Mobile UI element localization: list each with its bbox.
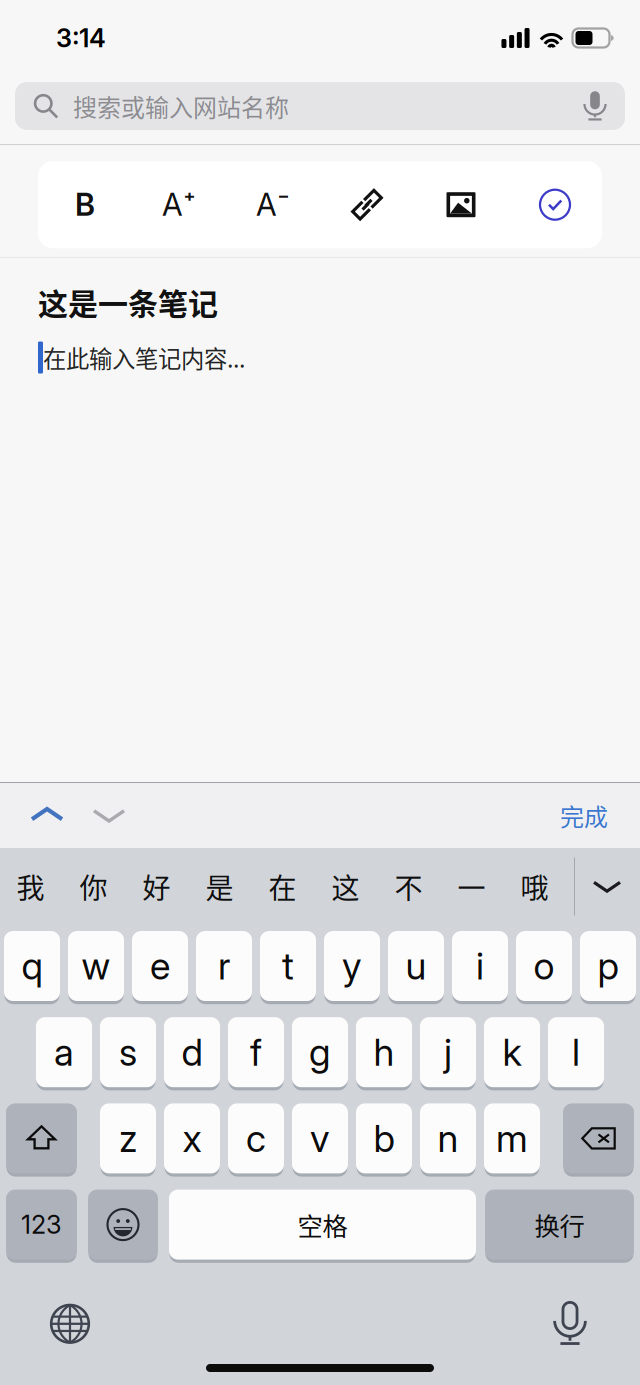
- staticText: f: [250, 1030, 262, 1075]
- button[interactable]: f: [228, 1017, 284, 1090]
- staticText: d: [181, 1030, 202, 1075]
- staticText: 搜索或输入网站名称: [73, 89, 289, 123]
- staticText: z: [119, 1116, 137, 1161]
- staticText: b: [373, 1116, 394, 1161]
- button[interactable]: v: [292, 1103, 348, 1177]
- button[interactable]: w: [68, 931, 124, 1004]
- button[interactable]: t: [260, 931, 316, 1004]
- button[interactable]: p: [580, 931, 636, 1004]
- staticText: 你: [79, 866, 107, 907]
- staticText: 这: [331, 866, 359, 907]
- staticText: 是: [205, 866, 233, 907]
- button[interactable]: 空格: [169, 1190, 476, 1263]
- staticText: 一: [457, 866, 485, 907]
- button[interactable]: A⁻: [226, 161, 320, 248]
- staticText: 在此输入笔记内容...: [43, 341, 245, 374]
- staticText: o: [533, 943, 554, 989]
- staticText: 好: [142, 866, 170, 907]
- button[interactable]: a: [36, 1017, 92, 1090]
- button[interactable]: c: [228, 1103, 284, 1177]
- button[interactable]: Next keyboard: [25, 1293, 115, 1355]
- staticText: 哦: [520, 866, 548, 907]
- button[interactable]: 哦: [503, 848, 566, 925]
- button[interactable]: B: [38, 161, 132, 248]
- button[interactable]: k: [484, 1017, 540, 1090]
- staticText: u: [405, 943, 426, 989]
- button[interactable]: h: [356, 1017, 412, 1090]
- button[interactable]: Dictation: [525, 1293, 615, 1355]
- button[interactable]: 在: [251, 848, 314, 925]
- button[interactable]: r: [196, 931, 252, 1004]
- button[interactable]: n: [420, 1103, 476, 1177]
- button[interactable]: m: [484, 1103, 540, 1177]
- staticText: r: [218, 943, 230, 989]
- staticText: e: [150, 943, 170, 989]
- staticText: 不: [394, 866, 422, 907]
- staticText: s: [119, 1030, 137, 1075]
- button[interactable]: b: [356, 1103, 412, 1177]
- button[interactable]: 是: [188, 848, 251, 925]
- staticText: 3:14: [56, 23, 106, 53]
- button[interactable]: Previous: [16, 784, 78, 848]
- button[interactable]: Next: [78, 784, 140, 848]
- staticText: k: [502, 1030, 521, 1075]
- button[interactable]: 不: [377, 848, 440, 925]
- staticText: w: [81, 943, 110, 989]
- button[interactable]: A⁺: [132, 161, 226, 248]
- staticText: 在: [268, 866, 296, 907]
- staticText: n: [437, 1116, 458, 1161]
- button[interactable]: g: [292, 1017, 348, 1090]
- button[interactable]: 完成: [554, 784, 614, 848]
- staticText: g: [309, 1030, 331, 1075]
- button[interactable]: 搜索或输入网站名称: [0, 76, 640, 144]
- staticText: 空格: [297, 1206, 347, 1243]
- button[interactable]: z: [100, 1103, 156, 1177]
- button[interactable]: 你: [62, 848, 125, 925]
- button[interactable]: Delete: [563, 1103, 634, 1177]
- staticText: c: [246, 1116, 266, 1161]
- button[interactable]: More candidates: [575, 848, 639, 925]
- staticText: h: [373, 1030, 394, 1075]
- button[interactable]: Insert image: [414, 161, 508, 248]
- button[interactable]: s: [100, 1017, 156, 1090]
- button[interactable]: Insert link: [320, 161, 414, 248]
- staticText: 完成: [560, 798, 608, 833]
- staticText: 123: [21, 1209, 62, 1240]
- staticText: 换行: [534, 1206, 584, 1243]
- button[interactable]: u: [388, 931, 444, 1004]
- staticText: A⁻: [256, 186, 290, 223]
- button[interactable]: 换行: [485, 1190, 634, 1263]
- staticText: 这是一条笔记: [38, 280, 218, 324]
- button[interactable]: j: [420, 1017, 476, 1090]
- staticText: v: [310, 1116, 330, 1161]
- staticText: i: [476, 943, 484, 989]
- staticText: B: [75, 186, 95, 223]
- button[interactable]: y: [324, 931, 380, 1004]
- staticText: q: [21, 943, 42, 989]
- button[interactable]: Emoji: [88, 1190, 158, 1263]
- button[interactable]: q: [4, 931, 60, 1004]
- staticText: A⁺: [162, 186, 196, 223]
- button[interactable]: l: [548, 1017, 604, 1090]
- button[interactable]: x: [164, 1103, 220, 1177]
- button[interactable]: 我: [0, 848, 62, 925]
- button[interactable]: i: [452, 931, 508, 1004]
- button[interactable]: d: [164, 1017, 220, 1090]
- button[interactable]: 123: [6, 1190, 77, 1263]
- staticText: l: [572, 1030, 580, 1075]
- staticText: a: [54, 1030, 74, 1075]
- button[interactable]: Shift: [6, 1103, 77, 1177]
- button[interactable]: Confirm: [508, 161, 602, 248]
- button[interactable]: o: [516, 931, 572, 1004]
- staticText: p: [597, 943, 618, 989]
- button[interactable]: 一: [440, 848, 503, 925]
- staticText: x: [182, 1116, 201, 1161]
- button[interactable]: e: [132, 931, 188, 1004]
- button[interactable]: 这: [314, 848, 377, 925]
- button[interactable]: 好: [125, 848, 188, 925]
- staticText: m: [496, 1116, 528, 1161]
- staticText: j: [444, 1030, 452, 1075]
- staticText: t: [282, 943, 294, 989]
- staticText: 我: [16, 866, 44, 907]
- staticText: y: [342, 943, 362, 989]
